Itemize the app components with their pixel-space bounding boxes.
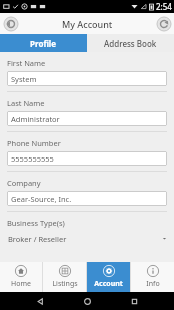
button[interactable]: Listings (43, 262, 86, 292)
staticText: Profile (30, 38, 57, 49)
button[interactable]: Address Book (87, 34, 174, 52)
button[interactable]: Profile (0, 34, 87, 52)
button[interactable]: Administrator (7, 111, 167, 126)
staticText: Listings (52, 279, 78, 289)
staticText: Address Book (104, 38, 157, 49)
staticText: System (11, 74, 37, 84)
staticText: Company (7, 178, 41, 188)
button[interactable]: Refresh (156, 16, 171, 31)
button[interactable]: Gear-Source, Inc. (7, 191, 167, 206)
staticText: 2:54 (156, 1, 172, 12)
staticText: Last Name (7, 98, 45, 108)
button[interactable]: Back (3, 16, 18, 31)
button[interactable]: Broker / Reseller (7, 231, 167, 246)
staticText: Gear-Source, Inc. (11, 194, 72, 204)
button[interactable]: Info (131, 262, 174, 292)
button[interactable]: Home (0, 262, 42, 292)
button[interactable]: Back (33, 294, 47, 308)
button[interactable]: Account (87, 262, 130, 292)
button[interactable]: 5555555555 (7, 151, 167, 166)
staticText: Business Type(s) (7, 218, 65, 228)
staticText: Phone Number (7, 138, 61, 148)
staticText: First Name (7, 58, 46, 68)
button[interactable]: Home (80, 294, 94, 308)
staticText: Broker / Reseller (8, 234, 67, 244)
staticText: My Account (62, 18, 113, 30)
staticText: Home (11, 279, 31, 289)
staticText: Administrator (11, 114, 60, 124)
staticText: 5555555555 (11, 154, 54, 164)
staticText: Account (94, 279, 123, 289)
staticText: Info (146, 279, 160, 289)
button[interactable]: Recents (127, 294, 141, 308)
button[interactable]: System (7, 71, 167, 86)
